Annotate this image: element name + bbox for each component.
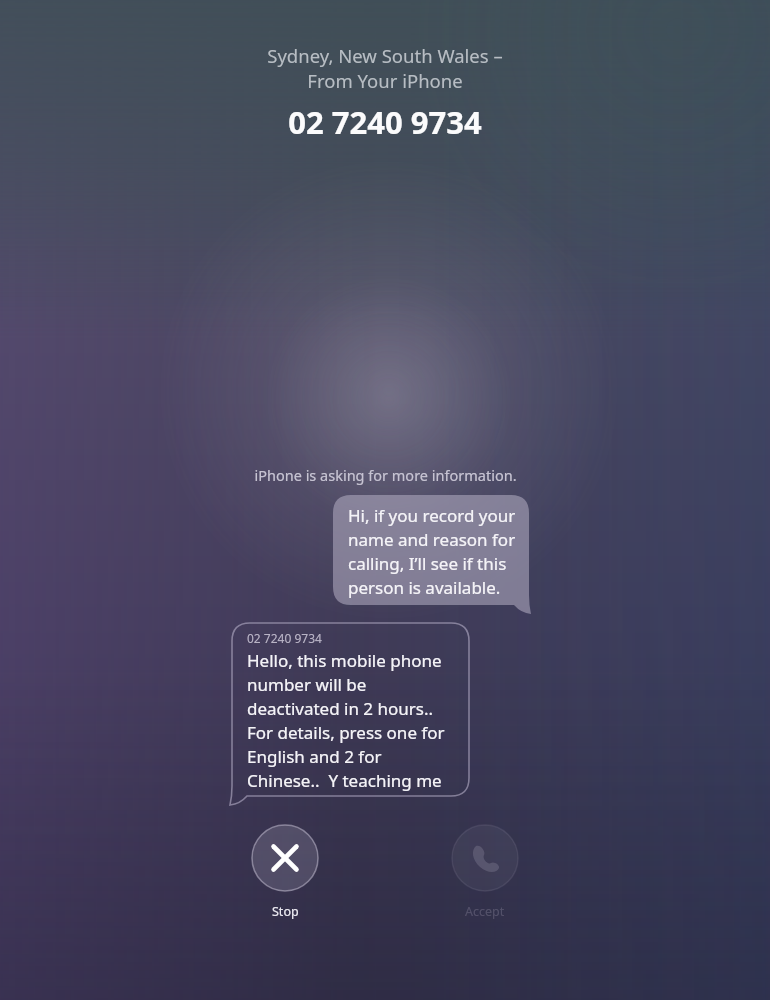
staticText: 02 7240 9734 — [288, 101, 482, 143]
staticText: Hello, this mobile phone number will be … — [247, 649, 445, 792]
staticText: 02 7240 9734 — [247, 630, 322, 646]
staticText: Accept — [465, 903, 505, 920]
button[interactable]: Stop — [245, 824, 325, 920]
staticText: Sydney, New South Wales – From Your iPho… — [267, 43, 503, 93]
button[interactable]: Hi, if you record your name and reason f… — [333, 495, 529, 605]
button[interactable]: 02 7240 9734 — [232, 623, 469, 796]
staticText: Hi, if you record your name and reason f… — [348, 504, 516, 599]
button[interactable]: Accept — [445, 824, 525, 920]
staticText: Stop — [272, 903, 299, 920]
staticText: iPhone is asking for more information. — [254, 465, 517, 485]
